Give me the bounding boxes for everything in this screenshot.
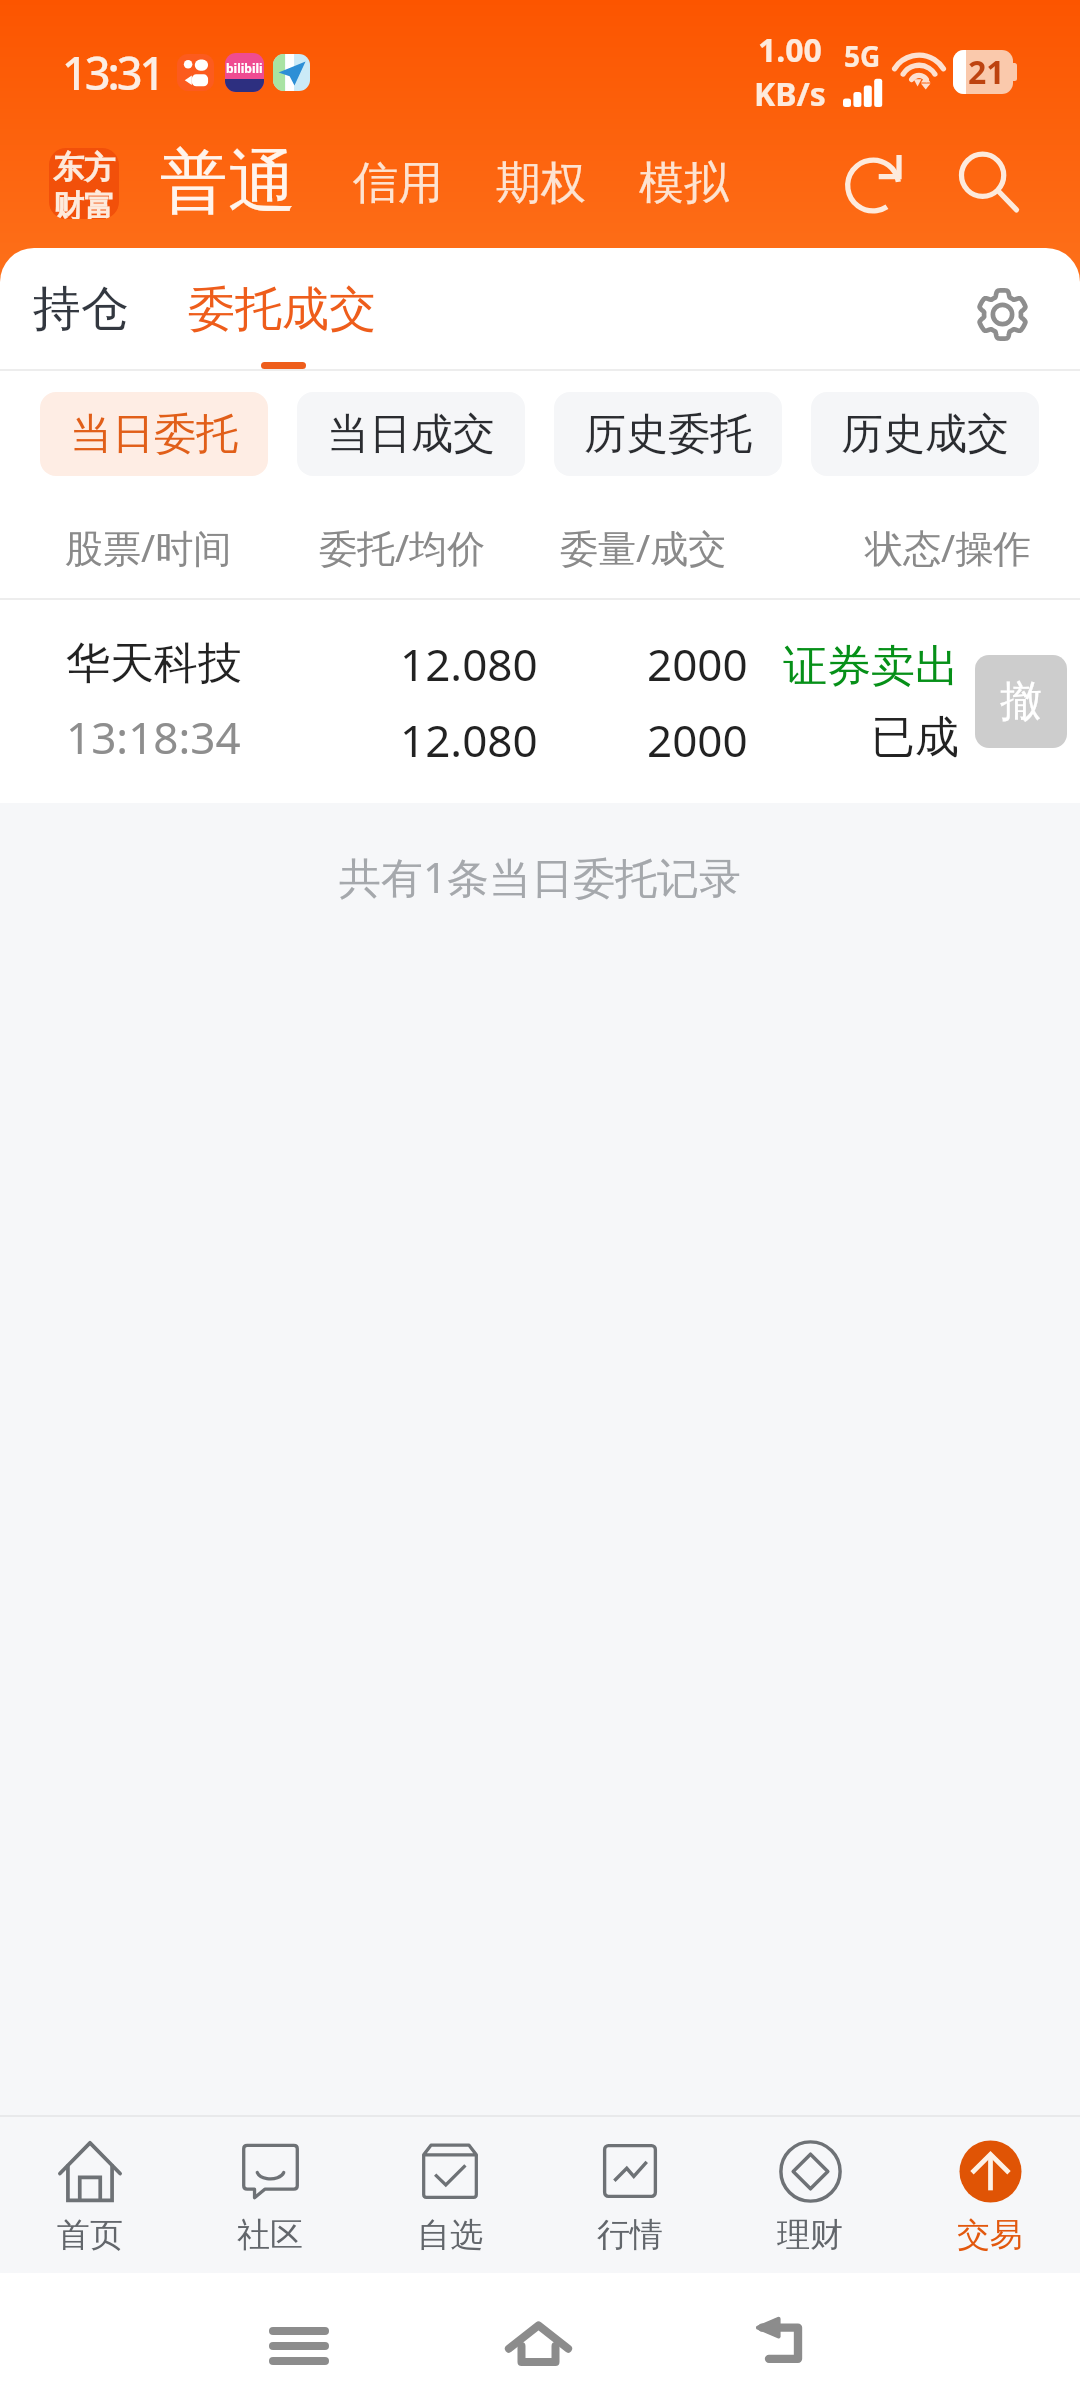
staticText: 华天科技 — [66, 636, 242, 691]
button[interactable]: Settings — [962, 274, 1042, 354]
staticText: 模拟 — [639, 155, 729, 212]
staticText: 首页 — [57, 2214, 123, 2256]
button[interactable]: 持仓 — [25, 263, 137, 355]
staticText: bilibili — [226, 60, 263, 76]
staticText: 撤 — [1000, 675, 1042, 728]
staticText: 财富 — [53, 187, 115, 219]
button[interactable]: 自选 — [360, 2117, 540, 2273]
button[interactable]: 华天科技 — [0, 600, 1080, 803]
button[interactable]: 历史委托 — [554, 392, 782, 476]
staticText: 2000 — [647, 634, 748, 694]
button[interactable]: Search — [947, 141, 1031, 225]
staticText: 委量/成交 — [560, 521, 727, 573]
staticText: 12.080 — [400, 634, 538, 694]
button[interactable]: 交易 — [900, 2117, 1080, 2273]
staticText: 13:31 — [62, 42, 163, 103]
staticText: 证券卖出 — [783, 639, 959, 694]
staticText: 社区 — [237, 2214, 303, 2256]
button[interactable]: 历史成交 — [811, 392, 1039, 476]
staticText: 信用 — [353, 155, 443, 212]
staticText: 委托成交 — [188, 280, 376, 339]
staticText: 2000 — [647, 710, 748, 770]
button[interactable]: 当日成交 — [297, 392, 525, 476]
button[interactable]: 撤 — [975, 655, 1067, 748]
staticText: 委托/均价 — [319, 521, 486, 573]
staticText: 自选 — [417, 2214, 483, 2256]
button[interactable]: Back — [726, 2288, 836, 2398]
staticText: 股票/时间 — [65, 521, 232, 573]
staticText: 当日委托 — [70, 408, 238, 461]
staticText: 共有1条当日委托记录 — [339, 848, 742, 905]
staticText: 行情 — [597, 2214, 663, 2256]
button[interactable]: 理财 — [720, 2117, 900, 2273]
staticText: 东方 — [53, 148, 115, 187]
button[interactable]: 社区 — [180, 2117, 360, 2273]
staticText: 已成 — [871, 710, 959, 765]
staticText: 状态/操作 — [865, 521, 1032, 573]
button[interactable]: 信用 — [353, 155, 443, 212]
staticText: 当日成交 — [327, 408, 495, 461]
staticText: 历史成交 — [841, 408, 1009, 461]
button[interactable]: 当日委托 — [40, 392, 268, 476]
staticText: 交易 — [957, 2214, 1023, 2256]
staticText: 期权 — [496, 155, 586, 212]
staticText: 13:18:34 — [66, 707, 241, 767]
button[interactable]: 普通 — [160, 140, 296, 226]
staticText: 12.080 — [400, 710, 538, 770]
button[interactable]: Recents — [244, 2291, 354, 2400]
button[interactable]: 行情 — [540, 2117, 720, 2273]
button[interactable]: 首页 — [0, 2117, 180, 2273]
button[interactable]: 模拟 — [639, 155, 729, 212]
staticText: 1.00 — [758, 28, 822, 72]
staticText: 普通 — [160, 140, 296, 226]
button[interactable]: 期权 — [496, 155, 586, 212]
staticText: 持仓 — [33, 279, 129, 339]
staticText: 理财 — [777, 2214, 843, 2256]
button[interactable]: Home — [483, 2288, 593, 2398]
staticText: 5G — [844, 37, 881, 75]
staticText: KB/s — [754, 72, 826, 116]
button[interactable]: Refresh — [833, 141, 917, 225]
button[interactable]: 委托成交 — [180, 264, 384, 355]
staticText: 历史委托 — [584, 408, 752, 461]
staticText: 21 — [968, 50, 1005, 94]
